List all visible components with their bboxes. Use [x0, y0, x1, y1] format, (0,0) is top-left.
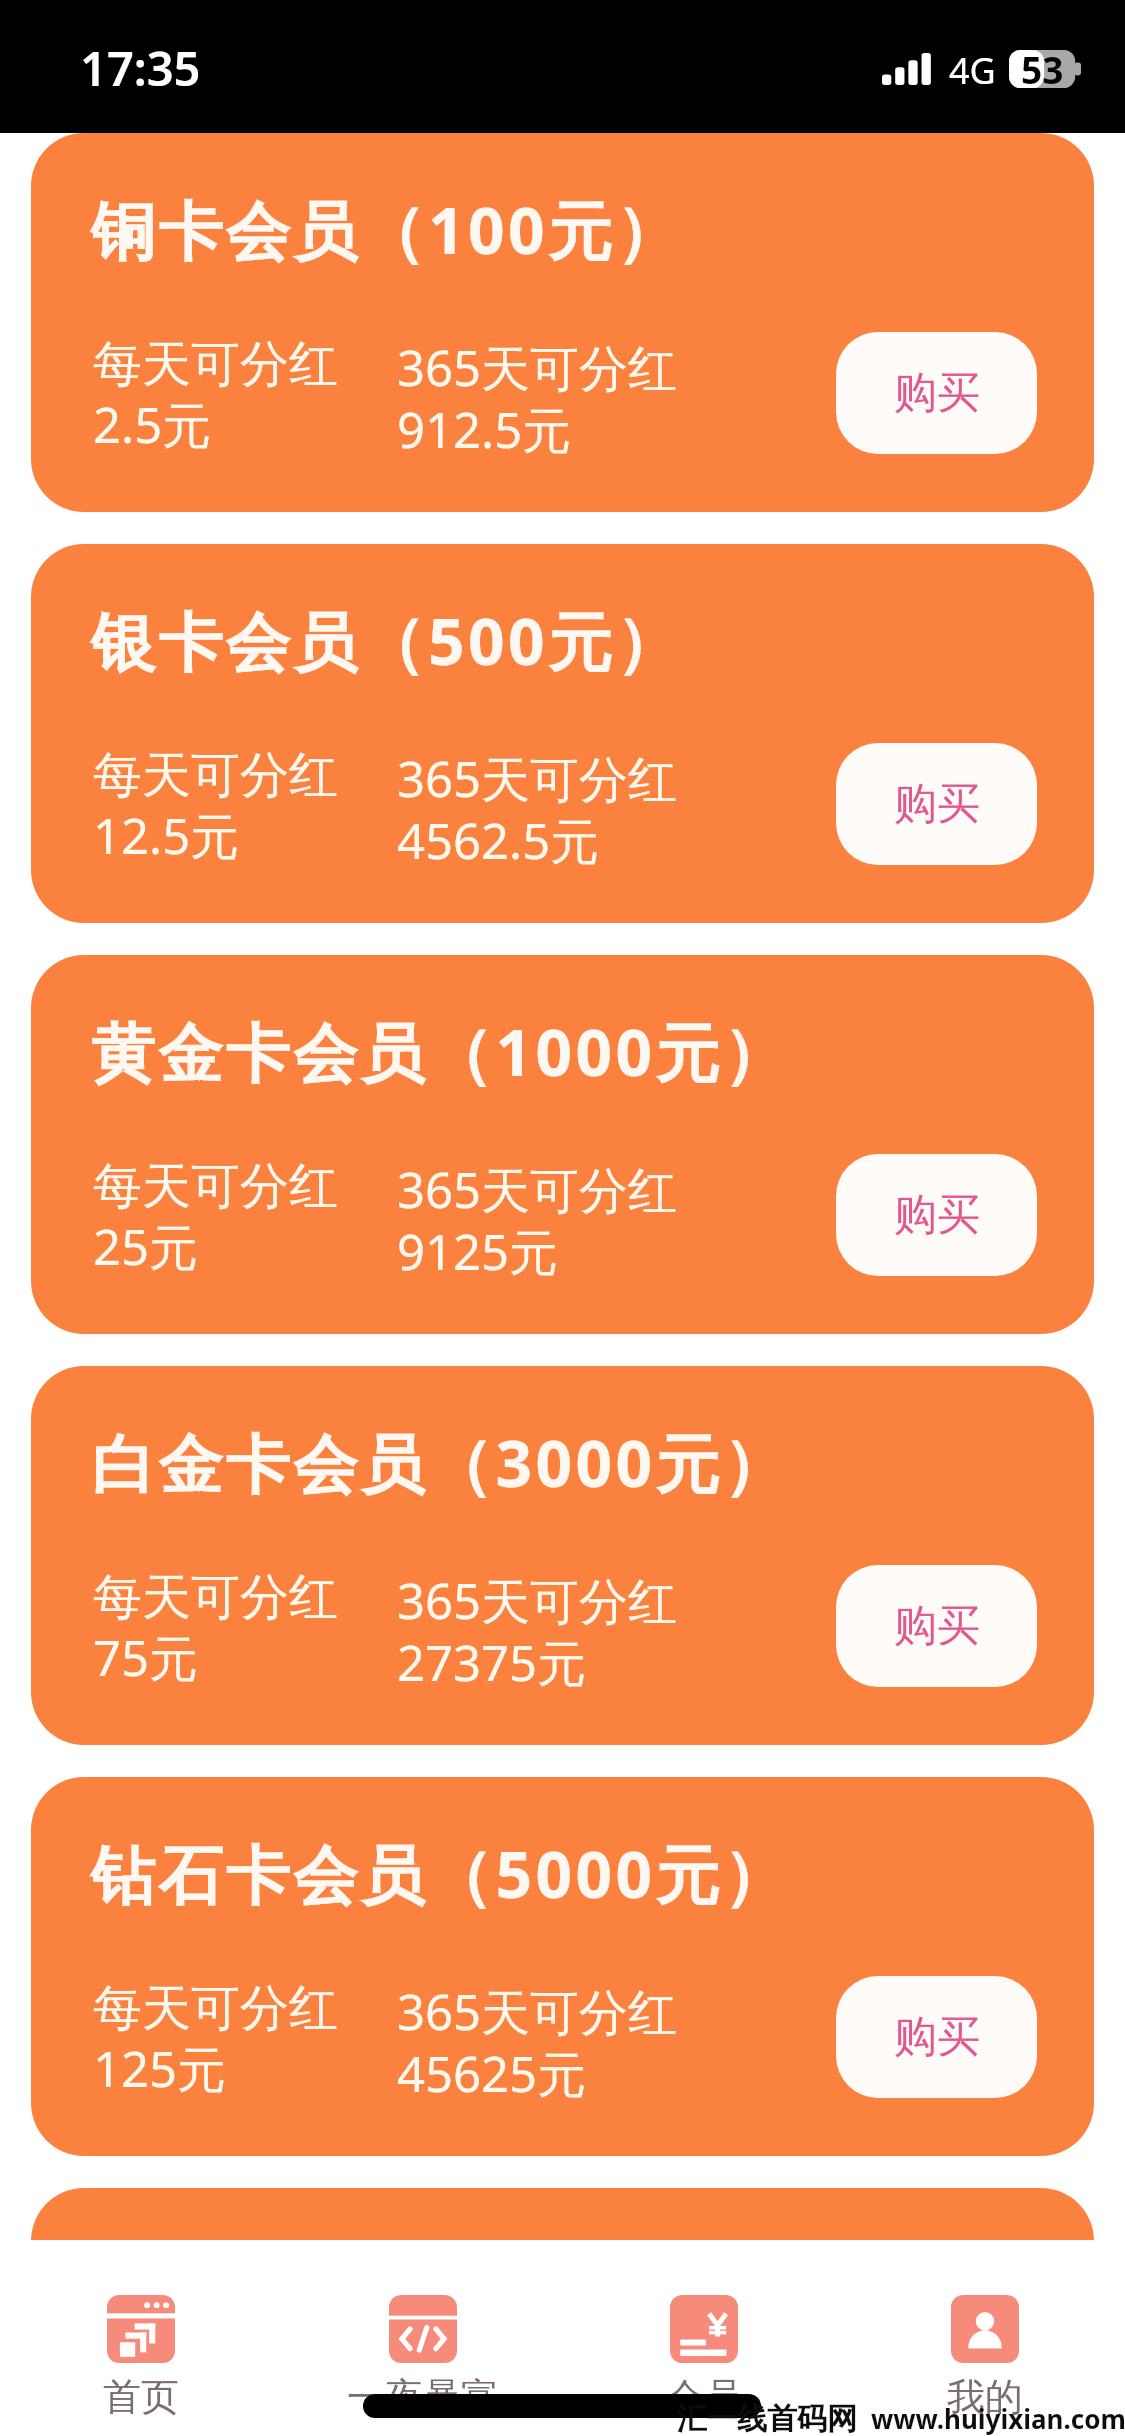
staticText: 4562.5元	[397, 807, 600, 874]
staticText: 每天可分红	[93, 334, 338, 396]
staticText: 2.5元	[93, 391, 212, 458]
staticText: 汇一线首码网	[677, 2400, 857, 2436]
staticText: 365天可分红	[397, 745, 678, 812]
staticText: 白金卡会员（3000元）	[91, 1419, 791, 1506]
staticText: 365天可分红	[397, 1156, 678, 1223]
staticText: 我的	[947, 2373, 1023, 2421]
staticText: 每天可分红	[93, 1978, 338, 2040]
staticText: 365天可分红	[397, 334, 678, 401]
button[interactable]: 购买	[836, 2387, 1037, 2436]
staticText: 首页	[103, 2373, 179, 2421]
staticText: 每天可分红	[93, 1567, 338, 1629]
other: 我的	[951, 2295, 1019, 2363]
staticText: 53	[1021, 44, 1064, 94]
other: 首页	[107, 2295, 175, 2363]
staticText: 365天可分红	[397, 1567, 678, 1634]
staticText: 铜卡会员（100元）	[91, 186, 683, 273]
button[interactable]: 至尊卡会员（10000元）	[31, 2188, 1094, 2436]
button[interactable]: 购买	[836, 1976, 1037, 2098]
staticText: 会员	[666, 2373, 742, 2421]
button[interactable]: 钻石卡会员（5000元）	[31, 1777, 1094, 2156]
button[interactable]: 会员	[563, 2240, 844, 2436]
other: 一夜暴富	[389, 2295, 457, 2363]
button[interactable]: 购买	[836, 1154, 1037, 1276]
staticText: 912.5元	[397, 396, 572, 463]
staticText: 365天可分红	[397, 2389, 678, 2436]
staticText: 购买	[894, 1599, 980, 1653]
staticText: 25元	[93, 1213, 199, 1280]
staticText: 75元	[93, 1624, 199, 1691]
staticText: 17:35	[80, 36, 201, 100]
staticText: 每天可分红	[93, 1156, 338, 1218]
staticText: 购买	[894, 2010, 980, 2064]
button[interactable]: 购买	[836, 743, 1037, 865]
staticText: 45625元	[397, 2040, 587, 2107]
staticText: 每天可分红	[93, 2389, 338, 2436]
staticText: www.huiyixian.com	[871, 2401, 1125, 2436]
button[interactable]: 我的	[844, 2240, 1125, 2436]
button[interactable]: 白金卡会员（3000元）	[31, 1366, 1094, 1745]
staticText: 12.5元	[93, 802, 240, 869]
button[interactable]: 购买	[836, 332, 1037, 454]
staticText: 购买	[894, 777, 980, 831]
button[interactable]: 一夜暴富	[282, 2240, 563, 2436]
staticText: 至尊卡会员（10000元）	[91, 2241, 831, 2328]
button[interactable]: 购买	[836, 1565, 1037, 1687]
staticText: 365天可分红	[397, 1978, 678, 2045]
staticText: 黄金卡会员（1000元）	[91, 1008, 791, 1095]
staticText: 一夜暴富	[347, 2373, 499, 2421]
staticText: 购买	[894, 1188, 980, 1242]
staticText: 每天可分红	[93, 745, 338, 807]
staticText: 购买	[894, 2421, 980, 2436]
button[interactable]: 铜卡会员（100元）	[31, 133, 1094, 512]
button[interactable]: 首页	[0, 2240, 282, 2436]
staticText: 购买	[894, 366, 980, 420]
staticText: 钻石卡会员（5000元）	[91, 1830, 791, 1917]
staticText: 125元	[93, 2035, 227, 2102]
staticText: 银卡会员（500元）	[91, 597, 683, 684]
staticText: 9125元	[397, 1218, 559, 1285]
staticText: 4G	[949, 46, 996, 95]
other: 会员	[670, 2295, 738, 2363]
staticText: 27375元	[397, 1629, 587, 1696]
button[interactable]: 银卡会员（500元）	[31, 544, 1094, 923]
button[interactable]: 黄金卡会员（1000元）	[31, 955, 1094, 1334]
